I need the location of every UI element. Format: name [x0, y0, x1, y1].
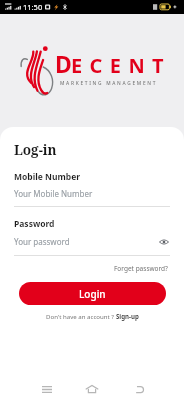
button[interactable]: Recents — [35, 377, 59, 400]
button[interactable]: Forget password? — [112, 262, 170, 275]
staticText: Mobile Number — [14, 171, 81, 183]
button[interactable]: Home — [80, 377, 104, 400]
staticText: Sign-up — [116, 312, 139, 320]
staticText: ECENT — [71, 52, 172, 79]
staticText: Log-in — [14, 141, 57, 159]
staticText: Your Mobile Number — [14, 188, 170, 199]
staticText: 11:50 — [23, 2, 43, 12]
staticText: D — [55, 48, 72, 79]
button[interactable]: Show password — [157, 235, 170, 248]
button[interactable]: Back — [128, 377, 152, 400]
staticText: Password — [14, 218, 55, 230]
button[interactable]: Login — [19, 282, 166, 305]
staticText: Don't have an account ? — [46, 312, 116, 320]
staticText: Login — [79, 287, 106, 301]
staticText: Your password — [14, 236, 157, 247]
button[interactable]: Sign-up — [116, 312, 139, 320]
staticText: MARKETING MANAGEMENT — [60, 80, 158, 87]
staticText: Forget password? — [114, 264, 168, 273]
